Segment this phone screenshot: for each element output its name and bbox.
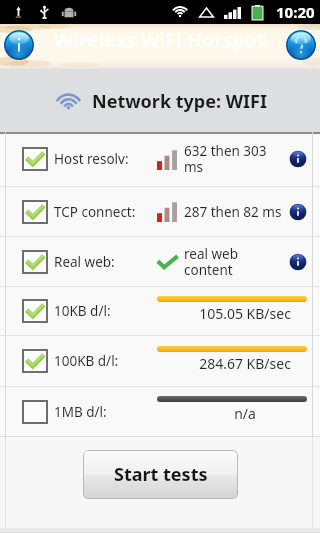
button[interactable]: Help [285, 29, 317, 61]
staticText: Start tests [114, 462, 208, 487]
button[interactable]: Details [289, 253, 307, 271]
button[interactable]: 100KB d/l: [0, 336, 320, 386]
staticText: 1MB d/l: [54, 403, 107, 421]
staticText: TCP connect: [54, 203, 136, 221]
button[interactable]: 1MB d/l: [0, 387, 320, 436]
button[interactable]: Start tests [83, 450, 238, 499]
staticText: Wireless WiFi Hotspot [54, 26, 266, 53]
staticText: 287 then 82 ms [184, 203, 287, 221]
button[interactable]: Details [289, 203, 307, 221]
staticText: 100KB d/l: [54, 352, 119, 370]
button[interactable]: Host resolv: [0, 132, 320, 186]
staticText: Real web: [54, 253, 115, 271]
button[interactable]: TCP connect: [0, 187, 320, 236]
button[interactable]: Details [289, 150, 307, 168]
button[interactable]: Info [3, 29, 35, 61]
button[interactable]: 10KB d/l: [0, 287, 320, 335]
staticText: 10:20 [276, 2, 315, 22]
staticText: 10KB d/l: [54, 302, 111, 320]
staticText: 105.05 KB/sec [183, 304, 307, 323]
staticText: Network type: WIFI [92, 89, 267, 114]
staticText: real web content [184, 245, 287, 279]
staticText: 284.67 KB/sec [183, 354, 307, 373]
button[interactable]: Real web: [0, 237, 320, 286]
staticText: Host resolv: [54, 150, 129, 168]
staticText: n/a [183, 404, 307, 423]
staticText: 632 then 303 ms [184, 142, 287, 176]
